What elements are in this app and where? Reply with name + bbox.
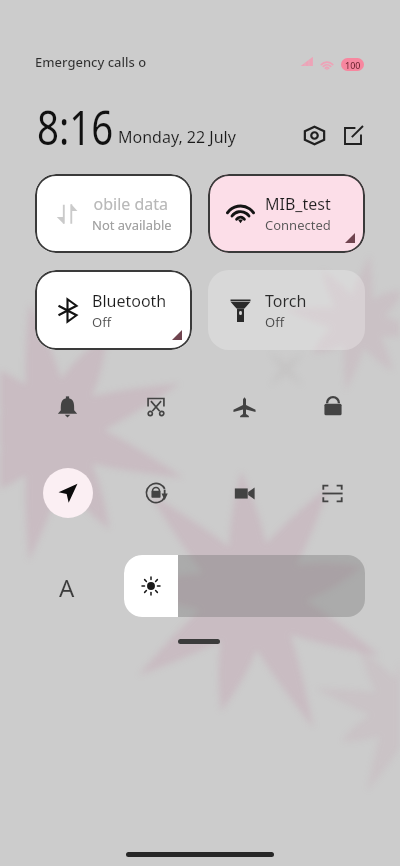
staticText: Emergency calls o (35, 53, 147, 71)
button[interactable]: Notifications (35, 381, 100, 431)
button[interactable]: Screenshot (123, 381, 188, 431)
staticText: MIB_test (265, 193, 331, 215)
button[interactable]: Bluetooth (35, 270, 192, 350)
button[interactable]: Torch (208, 270, 365, 350)
button[interactable]: Lock (300, 381, 365, 431)
button[interactable]: Auto rotate (123, 468, 188, 518)
button[interactable]: Airplane mode (212, 381, 277, 431)
staticText: 8:16 (37, 94, 114, 159)
staticText: Mobile data (92, 193, 169, 215)
staticText: Monday, 22 July (118, 126, 236, 148)
button[interactable]: Brightness (124, 555, 365, 617)
staticText: Bluetooth (92, 290, 167, 312)
staticText: Off (92, 313, 112, 331)
staticText: 100 (345, 59, 361, 71)
staticText: Connected (265, 216, 331, 234)
button[interactable]: Location (35, 468, 100, 518)
button[interactable]: Expand (178, 639, 220, 644)
button[interactable]: Settings (298, 119, 330, 151)
button[interactable]: Mobile data (35, 174, 192, 253)
staticText: Off (265, 313, 285, 331)
staticText: Torch (265, 290, 307, 312)
button[interactable]: MIB_test (208, 174, 365, 253)
button[interactable]: Screen record (212, 468, 277, 518)
button[interactable]: Edit (337, 120, 369, 152)
button[interactable]: Auto brightness (52, 571, 82, 601)
staticText: A (59, 571, 75, 601)
button[interactable]: Scan (300, 468, 365, 518)
staticText: Not available (92, 216, 172, 234)
